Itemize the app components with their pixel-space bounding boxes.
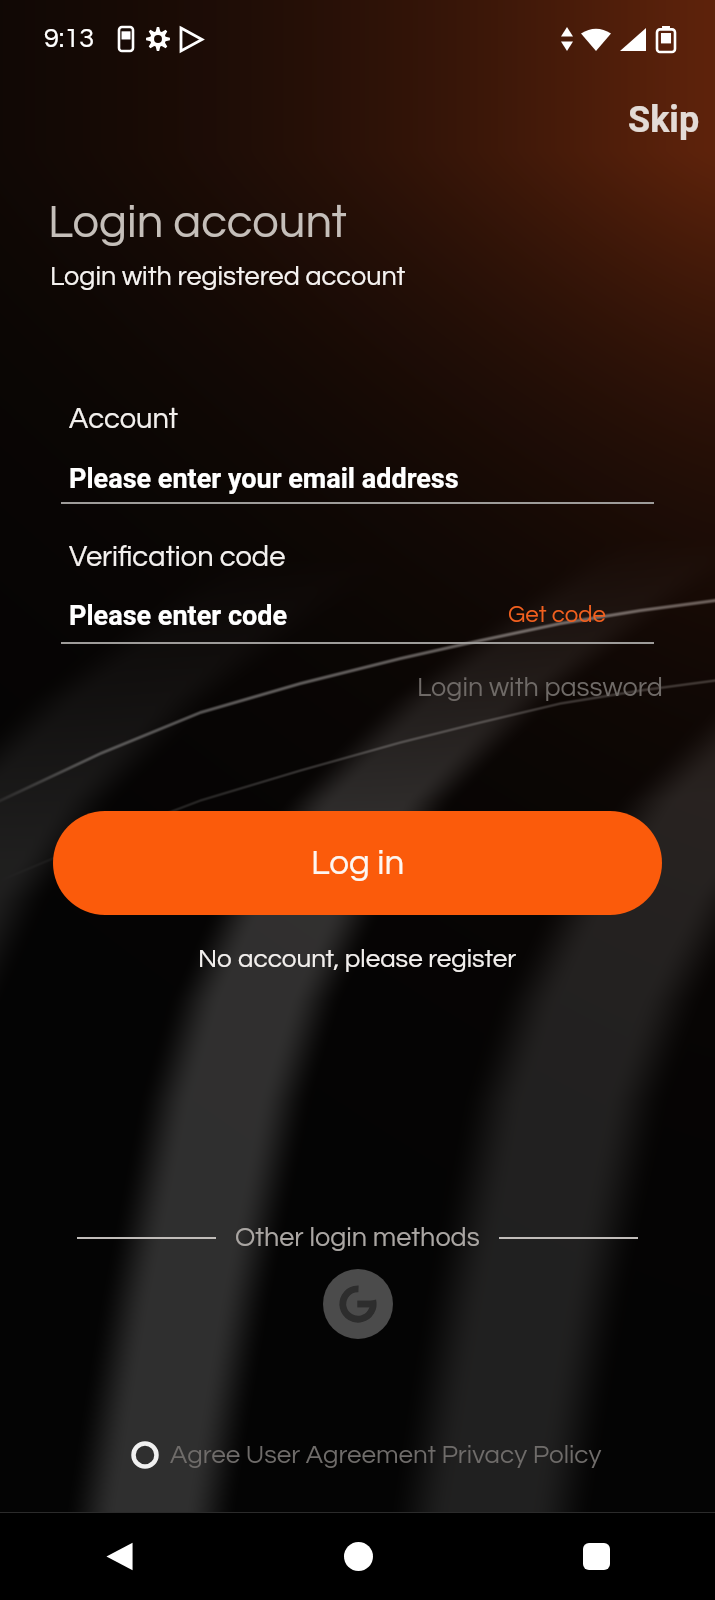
button[interactable]: Get code — [502, 594, 612, 635]
staticText: 9:13 — [44, 25, 95, 53]
staticText: Login with registered account — [50, 263, 406, 291]
staticText: Login account — [48, 198, 347, 246]
button[interactable]: No account, please register — [186, 940, 529, 979]
staticText: Skip — [628, 99, 700, 141]
button[interactable]: Skip — [611, 89, 715, 151]
button[interactable]: Log in — [53, 811, 662, 915]
staticText: Please enter code — [69, 600, 288, 632]
button[interactable]: Sign in with Google — [323, 1269, 393, 1339]
staticText: Other login methods — [235, 1224, 480, 1252]
staticText: No account, please register — [198, 946, 517, 973]
staticText: Account — [69, 404, 179, 434]
staticText: Login with password — [417, 674, 663, 702]
staticText: Agree User Agreement Privacy Policy — [170, 1442, 602, 1469]
button[interactable]: Recents — [477, 1512, 715, 1600]
staticText: Get code — [508, 602, 606, 627]
button[interactable]: Home — [239, 1512, 477, 1600]
staticText: Verification code — [69, 542, 286, 572]
button[interactable]: Login with password — [365, 666, 715, 710]
button[interactable]: Back — [0, 1512, 239, 1600]
staticText: Log in — [311, 845, 405, 881]
button[interactable]: Agree User Agreement Privacy Policy — [131, 1437, 602, 1473]
staticText: Please enter your email address — [69, 463, 459, 495]
